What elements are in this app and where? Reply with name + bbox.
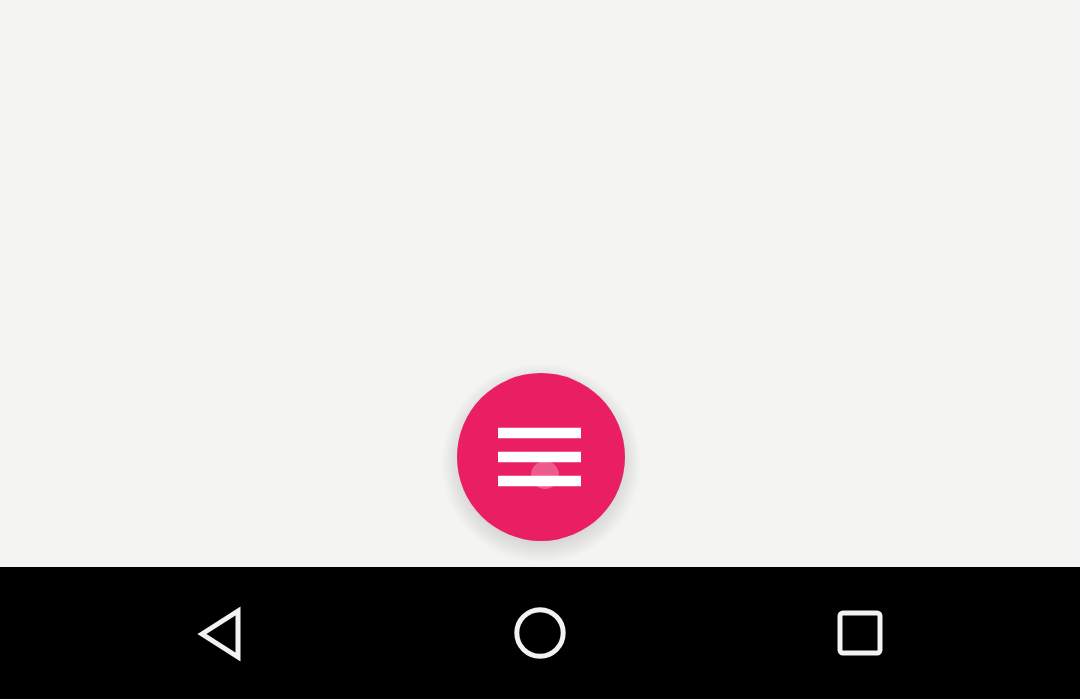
- button[interactable]: [480, 567, 600, 699]
- button[interactable]: [457, 373, 625, 541]
- button[interactable]: [164, 567, 284, 699]
- button[interactable]: [800, 567, 920, 699]
